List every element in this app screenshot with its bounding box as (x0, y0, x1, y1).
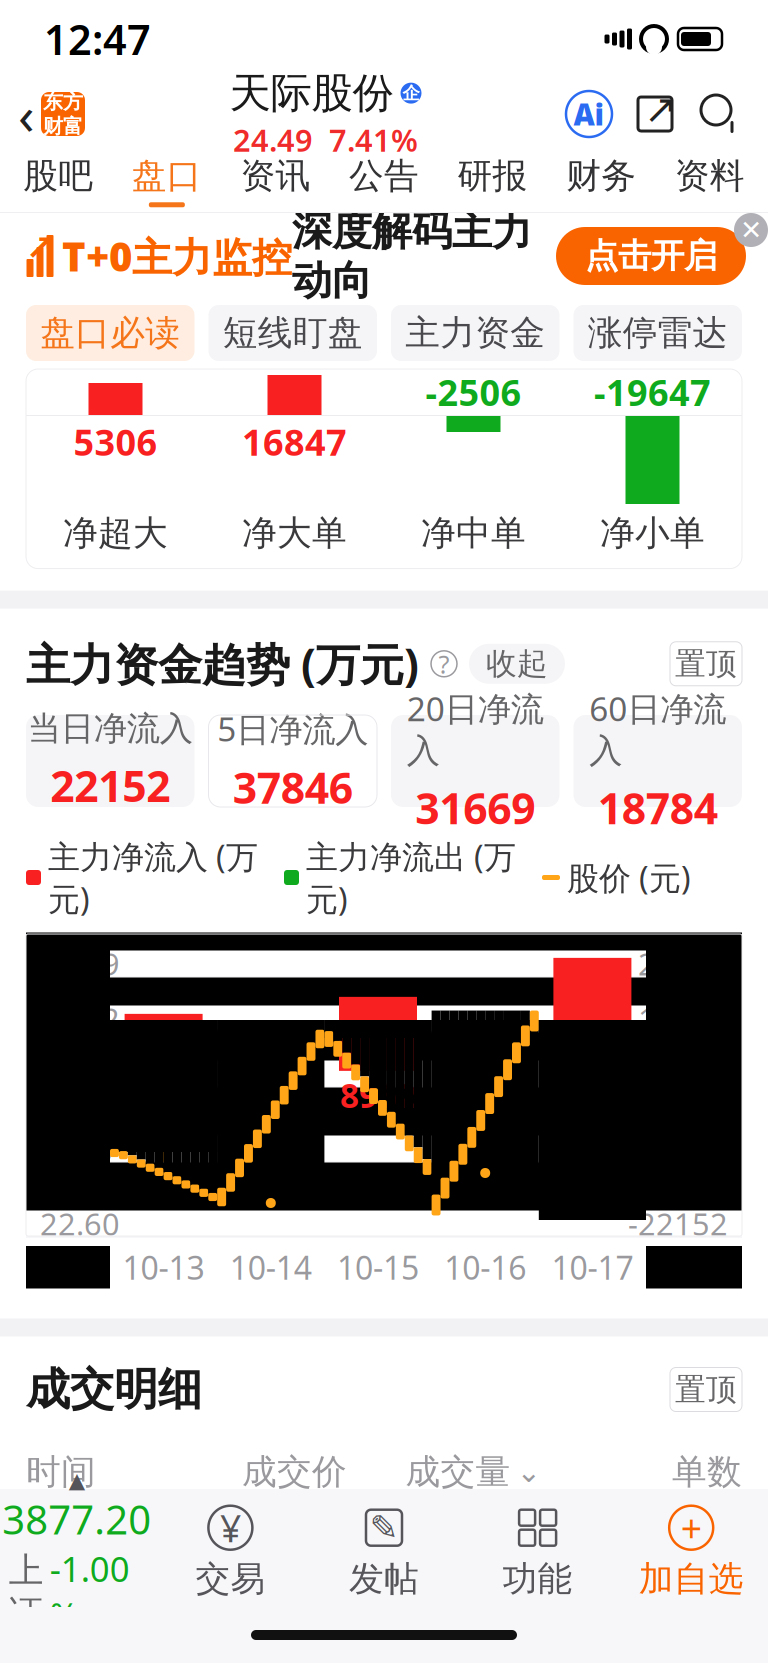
staticText: 净超大 (63, 512, 168, 555)
staticText: 企 (402, 82, 419, 104)
staticText: 收起 (486, 645, 548, 683)
staticText: ✕ (740, 215, 762, 245)
staticText: 3877.20 (2, 1492, 151, 1546)
staticText: 8962 (340, 1073, 416, 1117)
button[interactable]: 盘口必读 (26, 305, 194, 361)
button[interactable]: 点击开启 (556, 227, 746, 285)
staticText: 资讯 (240, 155, 310, 197)
staticText: 16847 (242, 418, 347, 466)
staticText: 22.60 (40, 1203, 120, 1244)
staticText: ↗ (644, 86, 678, 132)
staticText: 上证 (9, 1549, 44, 1634)
staticText: ‹ (18, 79, 35, 149)
staticText: 22152 (50, 757, 170, 814)
staticText: 5日净流入 (217, 706, 368, 751)
staticText: 置顶 (675, 645, 737, 683)
staticText: 成交量 (405, 1450, 510, 1493)
staticText: 置顶 (675, 1371, 737, 1408)
staticText: 10-15 (337, 1246, 419, 1288)
staticText: 股吧 (23, 155, 93, 197)
button[interactable]: AI 助手 (566, 91, 612, 137)
staticText: 37846 (233, 759, 353, 815)
staticText: 成交价 (242, 1450, 347, 1493)
button[interactable]: 主力资金 (391, 305, 559, 361)
staticText: Ai (573, 94, 604, 133)
staticText: 23.07 (40, 1128, 120, 1169)
button[interactable]: 5日净流入 (208, 715, 377, 807)
button[interactable]: 置顶 (670, 642, 742, 686)
staticText: 东方 财富 (43, 89, 83, 138)
button[interactable]: 财务 (547, 151, 655, 211)
staticText: ⌄ (516, 1455, 541, 1488)
staticText: 10-14 (230, 1246, 312, 1288)
button[interactable]: 20日净流入 (391, 715, 559, 807)
staticText: 净小单 (600, 512, 705, 555)
button[interactable]: 当日净流入 (26, 715, 194, 807)
staticText: 31669 (415, 779, 535, 836)
button[interactable]: 关闭广告 (734, 213, 768, 247)
staticText: 24.49 (40, 943, 120, 984)
button[interactable]: 分享 (634, 93, 676, 135)
staticText: 主力净流出 (万元) (306, 835, 516, 920)
staticText: 股价 (元) (567, 856, 691, 899)
button[interactable]: 涨停雷达 (573, 305, 742, 361)
staticText: 资料 (675, 155, 745, 197)
staticText: -1.00% (50, 1546, 130, 1638)
button[interactable]: ¥ (154, 1506, 307, 1600)
staticText: 盘口必读 (40, 312, 180, 354)
button[interactable]: 资料 (655, 151, 764, 211)
staticText: 涨停雷达 (588, 312, 728, 354)
button[interactable]: 返回 (0, 79, 85, 149)
staticText: 11:30:00 (26, 1515, 186, 1568)
button[interactable]: 资讯 (221, 151, 330, 211)
button[interactable]: 股吧 (4, 151, 113, 211)
button[interactable]: 公告 (330, 151, 438, 211)
staticText: 2079 (233, 1049, 309, 1093)
staticText: 12:47 (44, 12, 151, 66)
staticText: 财务 (566, 155, 636, 197)
staticText: ✎ (369, 1508, 398, 1547)
staticText: 研报 (458, 155, 528, 197)
staticText: 交易 (195, 1558, 265, 1600)
staticText: 天际股份 (229, 68, 393, 119)
staticText: 11076 (638, 998, 728, 1039)
button[interactable]: 盘口 (113, 151, 221, 211)
button[interactable]: 研报 (438, 151, 547, 211)
button[interactable]: 功能 (461, 1506, 614, 1600)
staticText: 短线盯盘 (223, 312, 363, 354)
staticText: T+0主力监控 (62, 229, 292, 283)
staticText: + (681, 1503, 702, 1552)
button[interactable]: 搜索 (698, 92, 742, 136)
button[interactable]: 收起 (469, 644, 565, 684)
button[interactable]: 成交量 (384, 1450, 563, 1493)
button[interactable]: 短线盯盘 (208, 305, 377, 361)
button[interactable]: ✎ (307, 1506, 461, 1600)
button[interactable]: 置顶 (670, 1367, 742, 1411)
staticText: 22152 (638, 943, 728, 984)
staticText: 10-13 (123, 1246, 205, 1288)
staticText: 当日净流入 (28, 708, 193, 749)
button[interactable]: 60日净流入 (573, 715, 742, 807)
staticText: 主力资金趋势 (万元) (26, 635, 419, 693)
staticText: 单数 (672, 1450, 742, 1493)
staticText: ▲ (69, 1468, 85, 1492)
staticText: 20日净流入 (407, 686, 544, 771)
staticText: -19647 (594, 368, 711, 416)
button[interactable]: ▲ (0, 1468, 154, 1638)
button[interactable]: + (614, 1506, 768, 1600)
staticText: ¥ (220, 1503, 241, 1552)
staticText: 10-17 (551, 1246, 633, 1288)
staticText: 18784 (598, 779, 718, 836)
staticText: 主力资金 (405, 312, 545, 354)
staticText: 3 (719, 1515, 742, 1568)
staticText: 深度解码主力动向 (292, 207, 532, 305)
staticText: 净大单 (242, 512, 347, 555)
staticText: -22152 (628, 1203, 728, 1244)
staticText: 569 (457, 1040, 514, 1084)
